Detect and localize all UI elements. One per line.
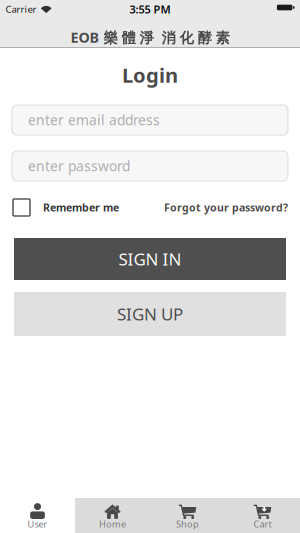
button[interactable]: enter email address	[12, 105, 288, 135]
staticText: enter email address	[28, 111, 160, 129]
button[interactable]: SIGN IN	[14, 238, 286, 280]
staticText: enter password	[28, 157, 130, 175]
staticText: EOB 樂 體 淨 消 化 酵 素	[70, 27, 229, 47]
staticText: Login	[122, 61, 178, 89]
staticText: SIGN IN	[118, 247, 181, 271]
staticText: Home	[99, 518, 126, 530]
staticText: SIGN UP	[117, 302, 183, 326]
staticText: Carrier	[5, 2, 36, 16]
button[interactable]: Cart	[225, 498, 300, 533]
button[interactable]: Remember me	[13, 199, 148, 216]
button[interactable]: enter password	[12, 151, 288, 181]
staticText: 3:55 PM	[129, 2, 170, 17]
button[interactable]: Forgot your password?	[148, 199, 288, 216]
button[interactable]: Shop	[150, 498, 225, 533]
staticText: Forgot your password?	[164, 200, 288, 215]
staticText: Shop	[176, 518, 199, 530]
button[interactable]: User	[0, 498, 75, 533]
button[interactable]: SIGN UP	[14, 292, 286, 336]
staticText: User	[27, 518, 47, 530]
staticText: Cart	[253, 518, 271, 530]
staticText: Remember me	[43, 200, 119, 215]
button[interactable]: Home	[75, 498, 150, 533]
